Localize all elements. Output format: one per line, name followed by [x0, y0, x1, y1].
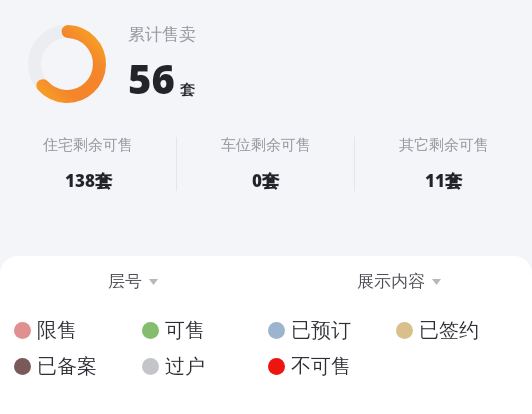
staticText: 可售: [165, 318, 205, 343]
other: 已预订: [268, 322, 285, 339]
other: 可售: [142, 322, 159, 339]
staticText: 过户: [165, 354, 205, 379]
button[interactable]: 住宅剩余可售: [0, 132, 176, 196]
staticText: 累计售卖: [128, 24, 196, 45]
button[interactable]: 已预订: [268, 318, 396, 343]
button[interactable]: 已签约: [396, 318, 516, 343]
staticText: 套: [180, 81, 195, 100]
other: 已签约: [396, 322, 413, 339]
staticText: 不可售: [291, 354, 351, 379]
button[interactable]: 过户: [142, 354, 268, 379]
staticText: 住宅剩余可售: [43, 136, 133, 155]
staticText: 已备案: [37, 354, 97, 379]
staticText: 138套: [65, 169, 112, 192]
button[interactable]: 不可售: [268, 354, 396, 379]
staticText: 其它剩余可售: [399, 136, 489, 155]
button[interactable]: 层号: [98, 265, 168, 298]
other: 限售: [14, 322, 31, 339]
staticText: 展示内容: [357, 271, 425, 292]
other: 已备案: [14, 358, 31, 375]
staticText: 已签约: [419, 318, 479, 343]
button[interactable]: 限售: [14, 318, 142, 343]
staticText: 11套: [425, 169, 462, 192]
button[interactable]: 可售: [142, 318, 268, 343]
staticText: 限售: [37, 318, 77, 343]
other: 不可售: [268, 358, 285, 375]
button[interactable]: 已备案: [14, 354, 142, 379]
button[interactable]: 展示内容: [347, 265, 451, 298]
staticText: 56: [128, 51, 175, 105]
staticText: 已预订: [291, 318, 351, 343]
button[interactable]: 车位剩余可售: [177, 132, 354, 196]
button[interactable]: 其它剩余可售: [355, 132, 532, 196]
staticText: 0套: [252, 169, 279, 192]
staticText: 层号: [108, 271, 142, 292]
staticText: 车位剩余可售: [221, 136, 311, 155]
other: 过户: [142, 358, 159, 375]
